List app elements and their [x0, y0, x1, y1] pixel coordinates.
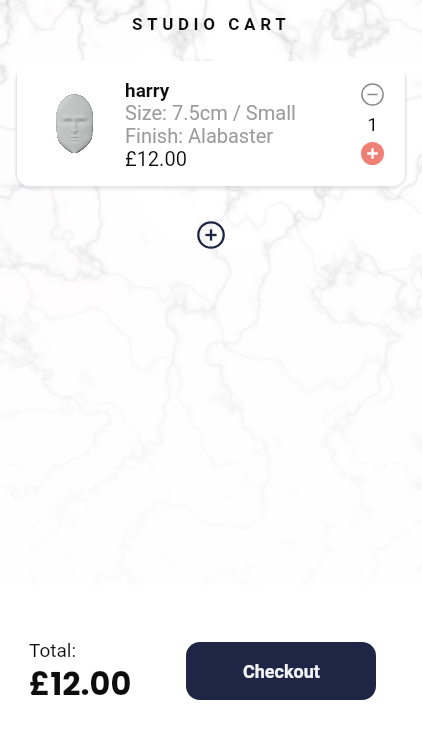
staticText: Finish: Alabaster	[125, 124, 274, 147]
staticText: 1	[367, 113, 378, 135]
button[interactable]: Checkout	[186, 642, 376, 700]
staticText: Total:	[29, 639, 77, 661]
staticText: £12.00	[29, 661, 132, 706]
button[interactable]: Increase quantity	[361, 142, 384, 165]
staticText: £12.00	[125, 147, 187, 170]
staticText: harry	[125, 79, 170, 101]
button[interactable]: Decrease quantity	[361, 83, 384, 106]
staticText: STUDIO CART	[132, 14, 291, 34]
button[interactable]: Add item	[197, 221, 225, 249]
staticText: Checkout	[243, 661, 320, 682]
button[interactable]: harry	[17, 61, 405, 186]
staticText: Size: 7.5cm / Small	[125, 101, 296, 124]
